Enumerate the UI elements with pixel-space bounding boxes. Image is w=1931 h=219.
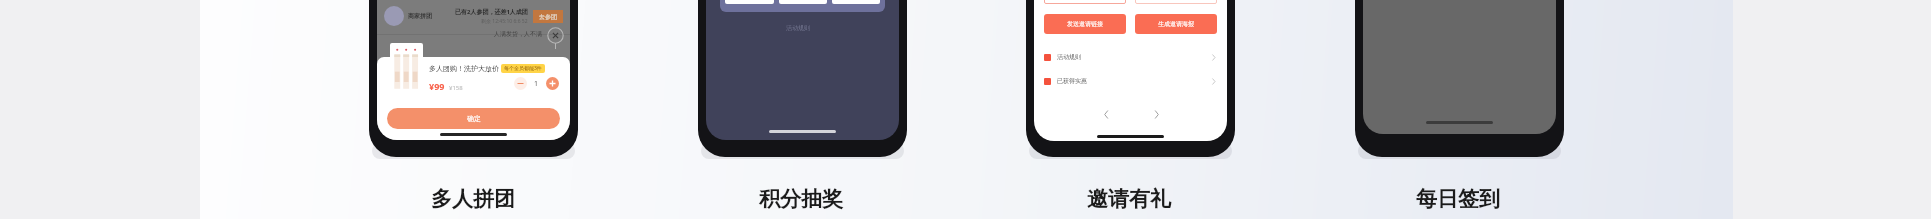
staticText: 多人拼团 [431, 186, 515, 212]
button[interactable]: Close [547, 27, 564, 44]
button[interactable]: 确定 [387, 108, 560, 129]
staticText: 确定 [467, 114, 481, 123]
button[interactable]: Decrease quantity [514, 77, 527, 90]
button[interactable]: 邀请有礼 [1059, 184, 1199, 214]
staticText: 已有2人参团，还差1人成团 [455, 8, 528, 16]
button[interactable]: Previous page [1099, 107, 1113, 121]
button[interactable]: 多人拼团 [403, 184, 543, 214]
staticText: 生成邀请海报 [1158, 20, 1194, 28]
staticText: 发送邀请链接 [1067, 20, 1103, 28]
staticText: 1 [534, 79, 539, 89]
staticText: 积分抽奖 [759, 186, 843, 212]
staticText: 多人团购！洗护大放价 [429, 64, 499, 73]
staticText: 人满发货，人不满 [494, 30, 542, 38]
staticText: 去参团 [539, 13, 557, 21]
staticText: 每日签到 [1416, 186, 1500, 212]
button[interactable]: 发送邀请链接 [1044, 14, 1126, 34]
staticText: 活动规则 [786, 24, 810, 32]
button[interactable]: 去参团 [533, 10, 563, 23]
staticText: 已获得实惠 [1057, 77, 1087, 85]
staticText: ¥158 [449, 84, 463, 92]
button[interactable]: 已获得实惠 [1034, 69, 1227, 93]
button[interactable]: 积分抽奖 [731, 184, 871, 214]
staticText: 活动规则 [1057, 53, 1081, 61]
staticText: 剩余 12:45:10 6:6 52 [481, 18, 528, 25]
button[interactable]: 生成邀请海报 [1135, 14, 1217, 34]
staticText: 每个全员都能3件 [504, 65, 542, 72]
button[interactable]: Increase quantity [546, 77, 559, 90]
staticText: 商家拼团 [408, 12, 432, 20]
button[interactable]: Next page [1149, 107, 1163, 121]
staticText: 邀请有礼 [1087, 186, 1171, 212]
button[interactable]: 活动规则 [1034, 45, 1227, 69]
staticText: ¥99 [429, 80, 445, 92]
button[interactable]: 每日签到 [1388, 184, 1528, 214]
